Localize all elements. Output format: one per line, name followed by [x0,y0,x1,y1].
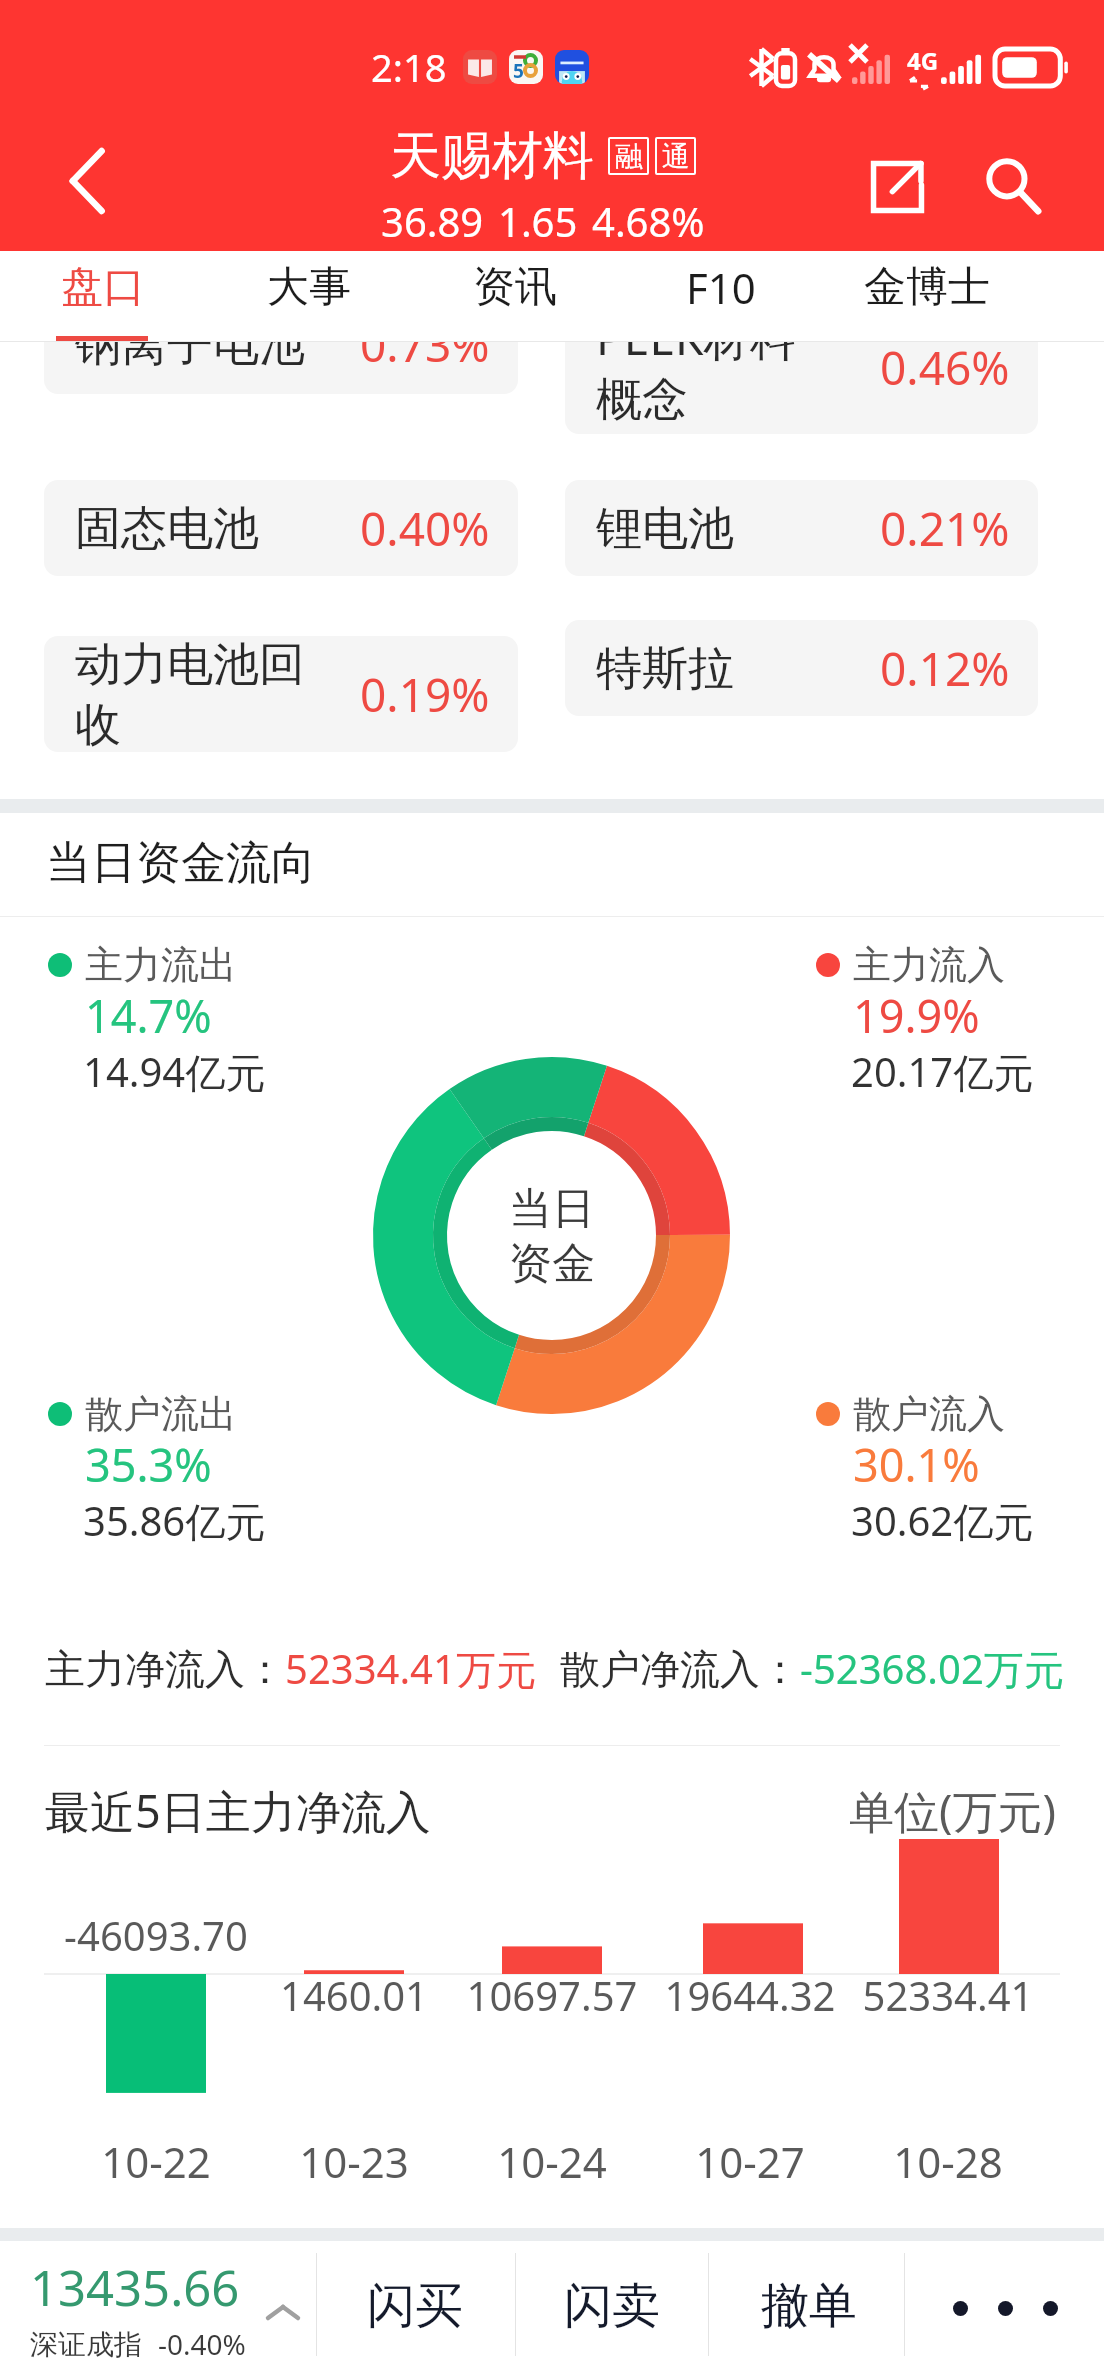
staticText: 5 [513,58,524,84]
button[interactable]: 钠离子电池 [44,342,518,394]
staticText: -0.40% [158,2325,246,2363]
staticText: 单位(万元) [849,1780,1057,1841]
staticText: 动力电池回收 [75,636,315,752]
staticText: F10 [686,259,756,316]
staticText: 通 [662,139,690,174]
staticText: -46093.70 [57,1908,255,1962]
staticText: 52334.41万元 [285,1641,536,1696]
staticText: 35.86亿元 [83,1493,266,1548]
staticText: 14.94亿元 [83,1044,266,1099]
button[interactable]: 动力电池回收 [44,636,518,752]
staticText: 特斯拉 [596,640,796,698]
staticText: 19644.32 [651,1968,849,2022]
staticText: 1460.01 [255,1968,453,2022]
staticText: 2:18 [371,41,447,93]
staticText: 10-23 [255,2133,453,2190]
staticText: 0.46% [880,342,1010,399]
button[interactable]: More [907,2241,1104,2376]
staticText: 1.65 [498,194,578,248]
button[interactable]: 闪买 [316,2241,513,2376]
staticText: 当日资金流向 [46,835,316,892]
staticText: -52368.02万元 [800,1641,1064,1696]
staticText: 52334.41 [849,1968,1047,2022]
button[interactable]: 13435.66 [0,2241,316,2376]
button[interactable]: 锂电池 [565,480,1038,576]
staticText: 30.1% [853,1434,980,1495]
staticText: 14.7% [85,985,212,1046]
button[interactable]: 撤单 [710,2241,907,2376]
button[interactable]: Share [839,128,955,244]
button[interactable]: PEEK材料概念 [565,342,1038,434]
staticText: 19.9% [853,985,980,1046]
button[interactable]: 闪卖 [513,2241,710,2376]
staticText: 0.73% [360,342,490,376]
staticText: 散户流出 [85,1390,237,1438]
button[interactable]: F10 [618,251,824,342]
staticText: 闪买 [367,2276,463,2336]
button[interactable]: 大事 [206,251,412,342]
staticText: 深证成指 [30,2327,142,2362]
staticText: 盘口 [61,261,145,314]
staticText: 10-27 [651,2133,849,2190]
staticText: 10-24 [453,2133,651,2190]
staticText: 35.3% [85,1434,212,1495]
button[interactable]: 金博士 [824,251,1030,342]
staticText: 主力净流入： [45,1644,285,1694]
button[interactable]: 资讯 [412,251,618,342]
staticText: 30.62亿元 [851,1493,1034,1548]
staticText: PEEK材料概念 [596,342,834,428]
staticText: 0.19% [360,663,490,726]
staticText: 4.68% [592,194,705,248]
button[interactable]: 特斯拉 [565,620,1038,716]
staticText: 0.40% [360,497,490,560]
staticText: 当日 资金 [509,1182,595,1291]
staticText: 大事 [267,261,351,314]
staticText: 0.12% [880,637,1010,700]
staticText: 主力流入 [853,941,1005,989]
staticText: 资讯 [473,261,557,314]
staticText: 锂电池 [596,500,796,558]
staticText: 天赐材料 [390,124,594,188]
staticText: 10-28 [849,2133,1047,2190]
staticText: 固态电池 [75,500,275,558]
staticText: 撤单 [761,2276,857,2336]
staticText: 主力流出 [85,941,237,989]
staticText: 散户净流入： [560,1644,800,1694]
button[interactable]: 固态电池 [44,480,518,576]
button[interactable]: Search [955,128,1071,244]
button[interactable]: 盘口 [0,251,206,342]
staticText: 10697.57 [453,1968,651,2022]
staticText: 13435.66 [30,2254,240,2321]
staticText: 0.21% [880,497,1010,560]
staticText: 融 [615,139,643,174]
staticText: 散户流入 [853,1390,1005,1438]
staticText: 金博士 [864,261,990,314]
staticText: 闪卖 [564,2276,660,2336]
staticText: 最近5日主力净流入 [45,1780,431,1841]
button[interactable]: Back [0,110,175,251]
staticText: 10-22 [57,2133,255,2190]
staticText: 36.89 [381,194,484,248]
staticText: 4G [907,44,939,77]
staticText: 钠离子电池 [75,342,315,374]
staticText: 20.17亿元 [851,1044,1034,1099]
